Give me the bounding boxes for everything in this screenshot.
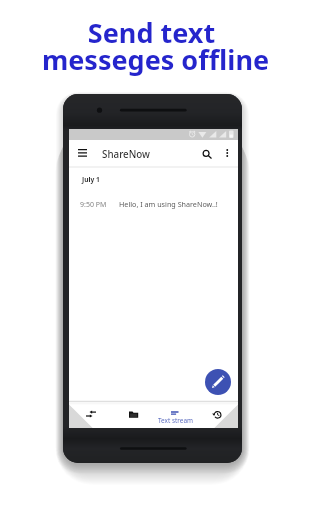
staticText: 9:50 PM — [80, 200, 107, 210]
button[interactable]: Files — [112, 401, 154, 428]
button[interactable]: Text stream — [154, 401, 196, 428]
staticText: Send text — [0, 14, 307, 51]
staticText: ShareNow — [102, 148, 151, 161]
button[interactable]: Compose message — [205, 369, 231, 395]
staticText: Text stream — [158, 416, 193, 425]
staticText: messeges offline — [0, 41, 311, 78]
button[interactable]: Search — [198, 142, 218, 163]
button[interactable]: Menu — [72, 144, 92, 162]
staticText: July 1 — [82, 175, 100, 184]
button[interactable]: History — [196, 401, 238, 428]
button[interactable]: Transfer — [69, 401, 112, 428]
button[interactable]: More options — [218, 142, 236, 163]
staticText: Hello, I am using ShareNow..! — [119, 199, 218, 209]
